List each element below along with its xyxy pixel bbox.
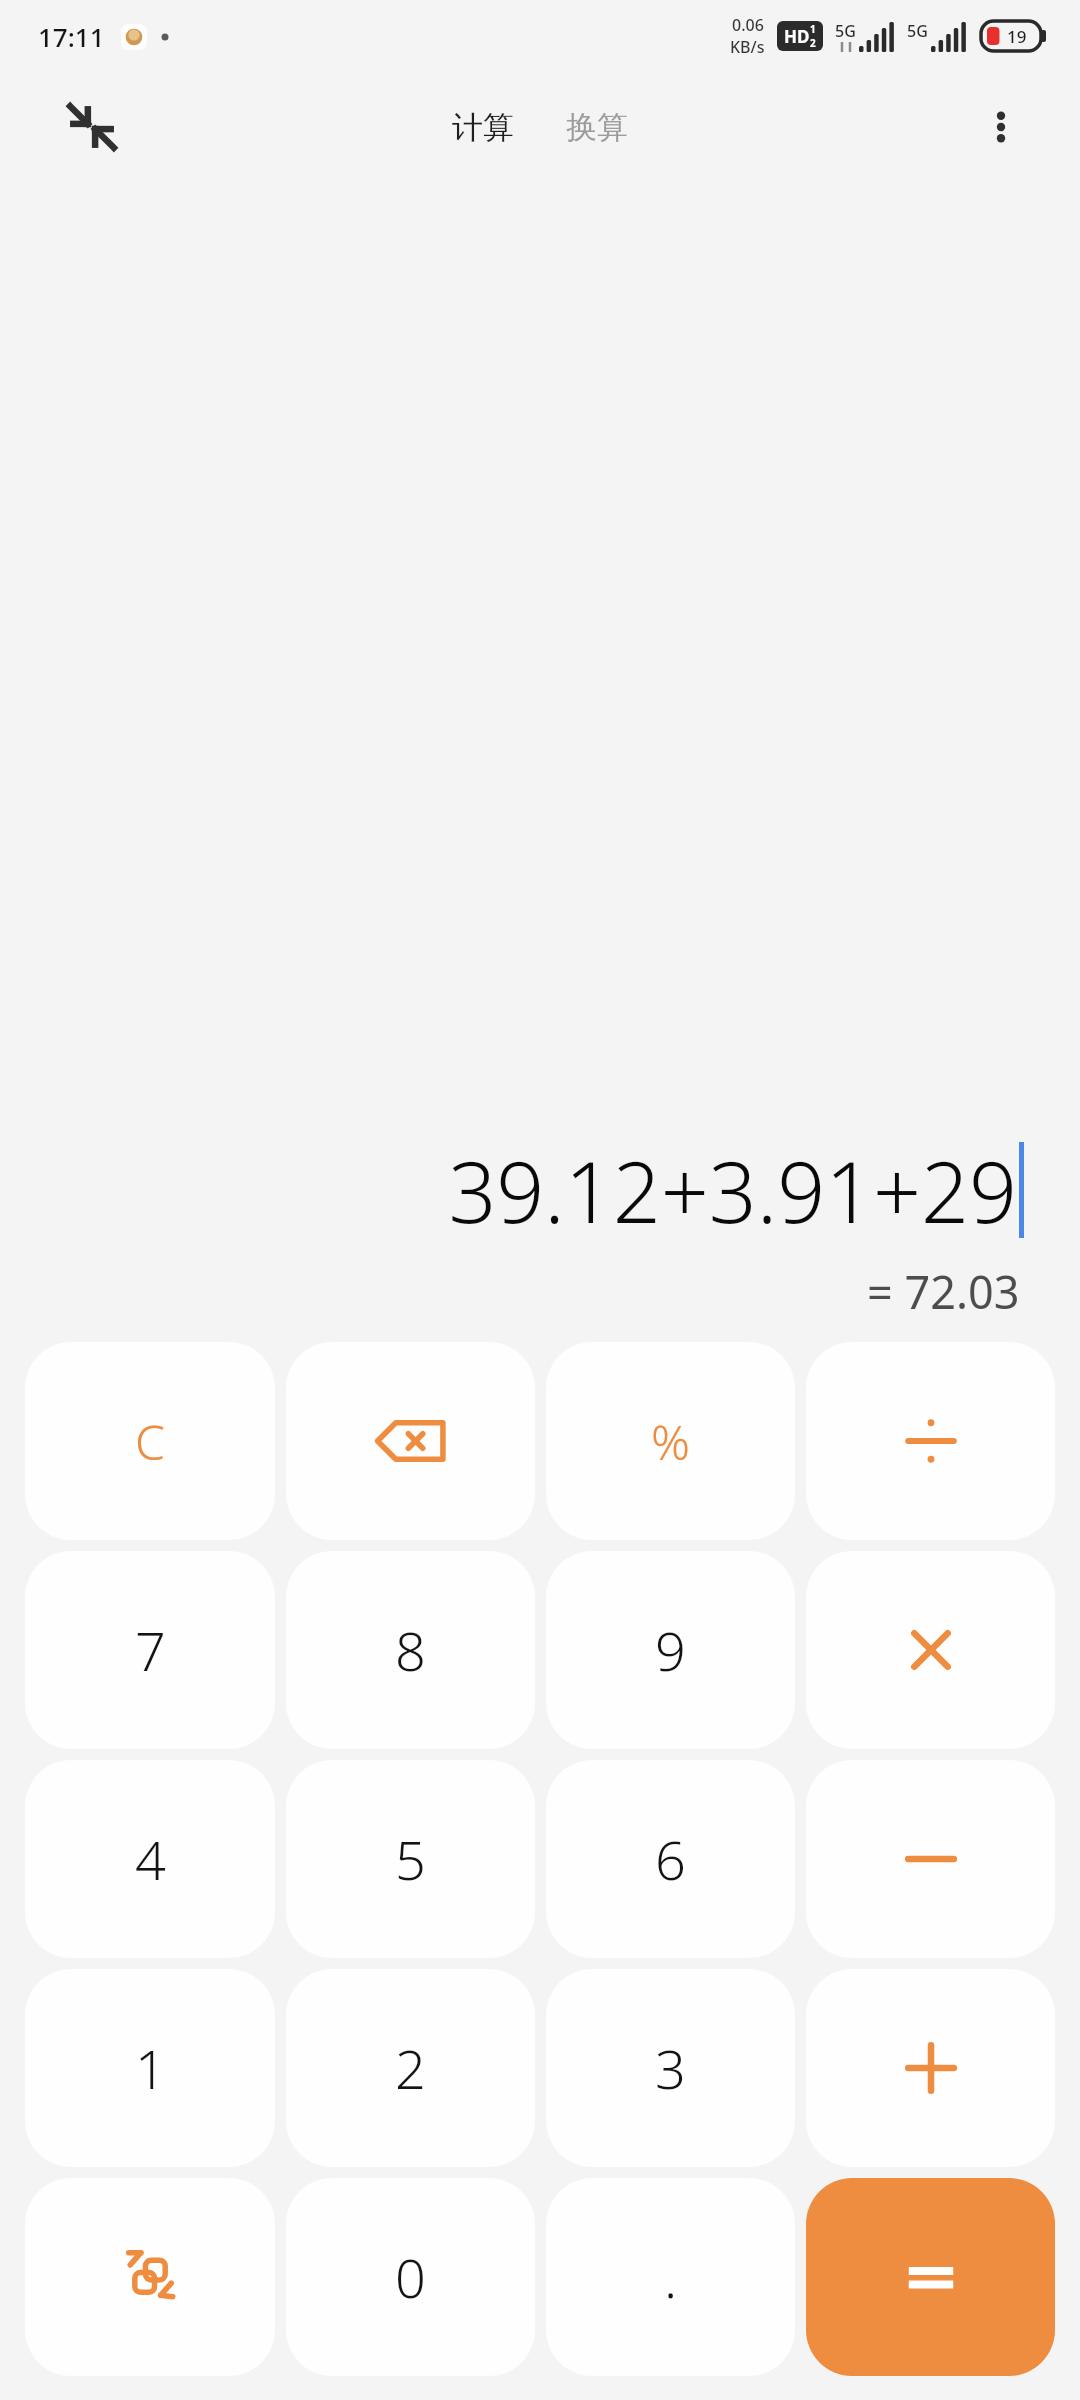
staticText: 8 xyxy=(395,1613,426,1687)
button[interactable]: Plus xyxy=(806,1969,1055,2167)
staticText: 39.12+3.91+29 xyxy=(448,1133,1017,1247)
button[interactable]: More functions xyxy=(25,2178,275,2376)
button[interactable]: 8 xyxy=(286,1551,535,1749)
button[interactable]: 2 xyxy=(286,1969,535,2167)
button[interactable]: % xyxy=(546,1342,795,1540)
staticText: 3 xyxy=(655,2031,686,2105)
button[interactable]: Collapse xyxy=(52,87,132,167)
button[interactable]: 4 xyxy=(25,1760,275,1958)
button[interactable]: . xyxy=(546,2178,795,2376)
staticText: 17:11 xyxy=(38,19,105,54)
button[interactable]: 0 xyxy=(286,2178,535,2376)
staticText: 6 xyxy=(655,1822,686,1896)
staticText: KB/s xyxy=(730,36,765,58)
button[interactable]: Equals xyxy=(806,2178,1055,2376)
staticText: 0 xyxy=(395,2240,426,2314)
button[interactable]: 计算 xyxy=(438,98,528,157)
button[interactable]: Divide xyxy=(806,1342,1055,1540)
staticText: % xyxy=(651,1409,690,1474)
staticText: 计算 xyxy=(452,108,514,147)
button[interactable]: C xyxy=(25,1342,275,1540)
staticText: 换算 xyxy=(566,108,628,147)
button[interactable]: 9 xyxy=(546,1551,795,1749)
staticText: 5 xyxy=(395,1822,426,1896)
staticText: . xyxy=(664,2240,678,2314)
staticText: 5G xyxy=(907,20,928,42)
staticText: 9 xyxy=(655,1613,686,1687)
button[interactable]: 换算 xyxy=(552,98,642,157)
button[interactable]: More options xyxy=(966,92,1036,162)
button[interactable]: 6 xyxy=(546,1760,795,1958)
staticText: 1 xyxy=(135,2031,166,2105)
staticText: 2 xyxy=(395,2031,426,2105)
staticText: 1 xyxy=(810,22,816,36)
button[interactable]: Multiply xyxy=(806,1551,1055,1749)
button[interactable]: Backspace xyxy=(286,1342,535,1540)
staticText: = 72.03 xyxy=(867,1261,1020,1322)
staticText: HD xyxy=(784,25,810,48)
staticText: 5G xyxy=(835,20,856,42)
staticText: 7 xyxy=(135,1613,166,1687)
button[interactable]: Minus xyxy=(806,1760,1055,1958)
button[interactable]: 5 xyxy=(286,1760,535,1958)
staticText: 4 xyxy=(135,1822,166,1896)
button[interactable]: 7 xyxy=(25,1551,275,1749)
staticText: 0.06 xyxy=(732,14,764,36)
button[interactable]: 3 xyxy=(546,1969,795,2167)
button[interactable]: 1 xyxy=(25,1969,275,2167)
staticText: 2 xyxy=(810,36,816,50)
staticText: 19 xyxy=(1007,25,1027,48)
staticText: C xyxy=(135,1409,165,1474)
